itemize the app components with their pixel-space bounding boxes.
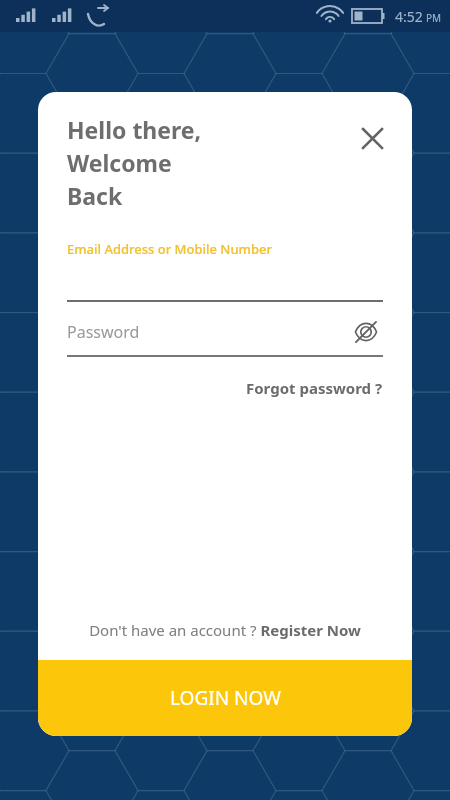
button[interactable]: Toggle password visibility <box>349 315 383 349</box>
button[interactable]: Close <box>352 118 392 158</box>
staticText: Forgot password ? <box>246 378 383 398</box>
staticText: PM <box>426 11 442 25</box>
button[interactable]: Password <box>67 315 383 357</box>
button[interactable]: Don't have an account ? Register Now <box>38 614 412 646</box>
button[interactable]: Forgot password ? <box>240 374 389 402</box>
staticText: Password <box>67 321 140 343</box>
button[interactable]: LOGIN NOW <box>38 660 412 736</box>
staticText: Don't have an account ? Register Now <box>89 620 361 640</box>
staticText: Hello there, Welcome Back <box>67 114 202 212</box>
staticText: Email Address or Mobile Number <box>67 240 272 258</box>
staticText: LOGIN NOW <box>170 685 281 711</box>
button[interactable]: Email Address or Mobile Number <box>67 240 383 302</box>
staticText: 4:52 <box>395 7 423 26</box>
